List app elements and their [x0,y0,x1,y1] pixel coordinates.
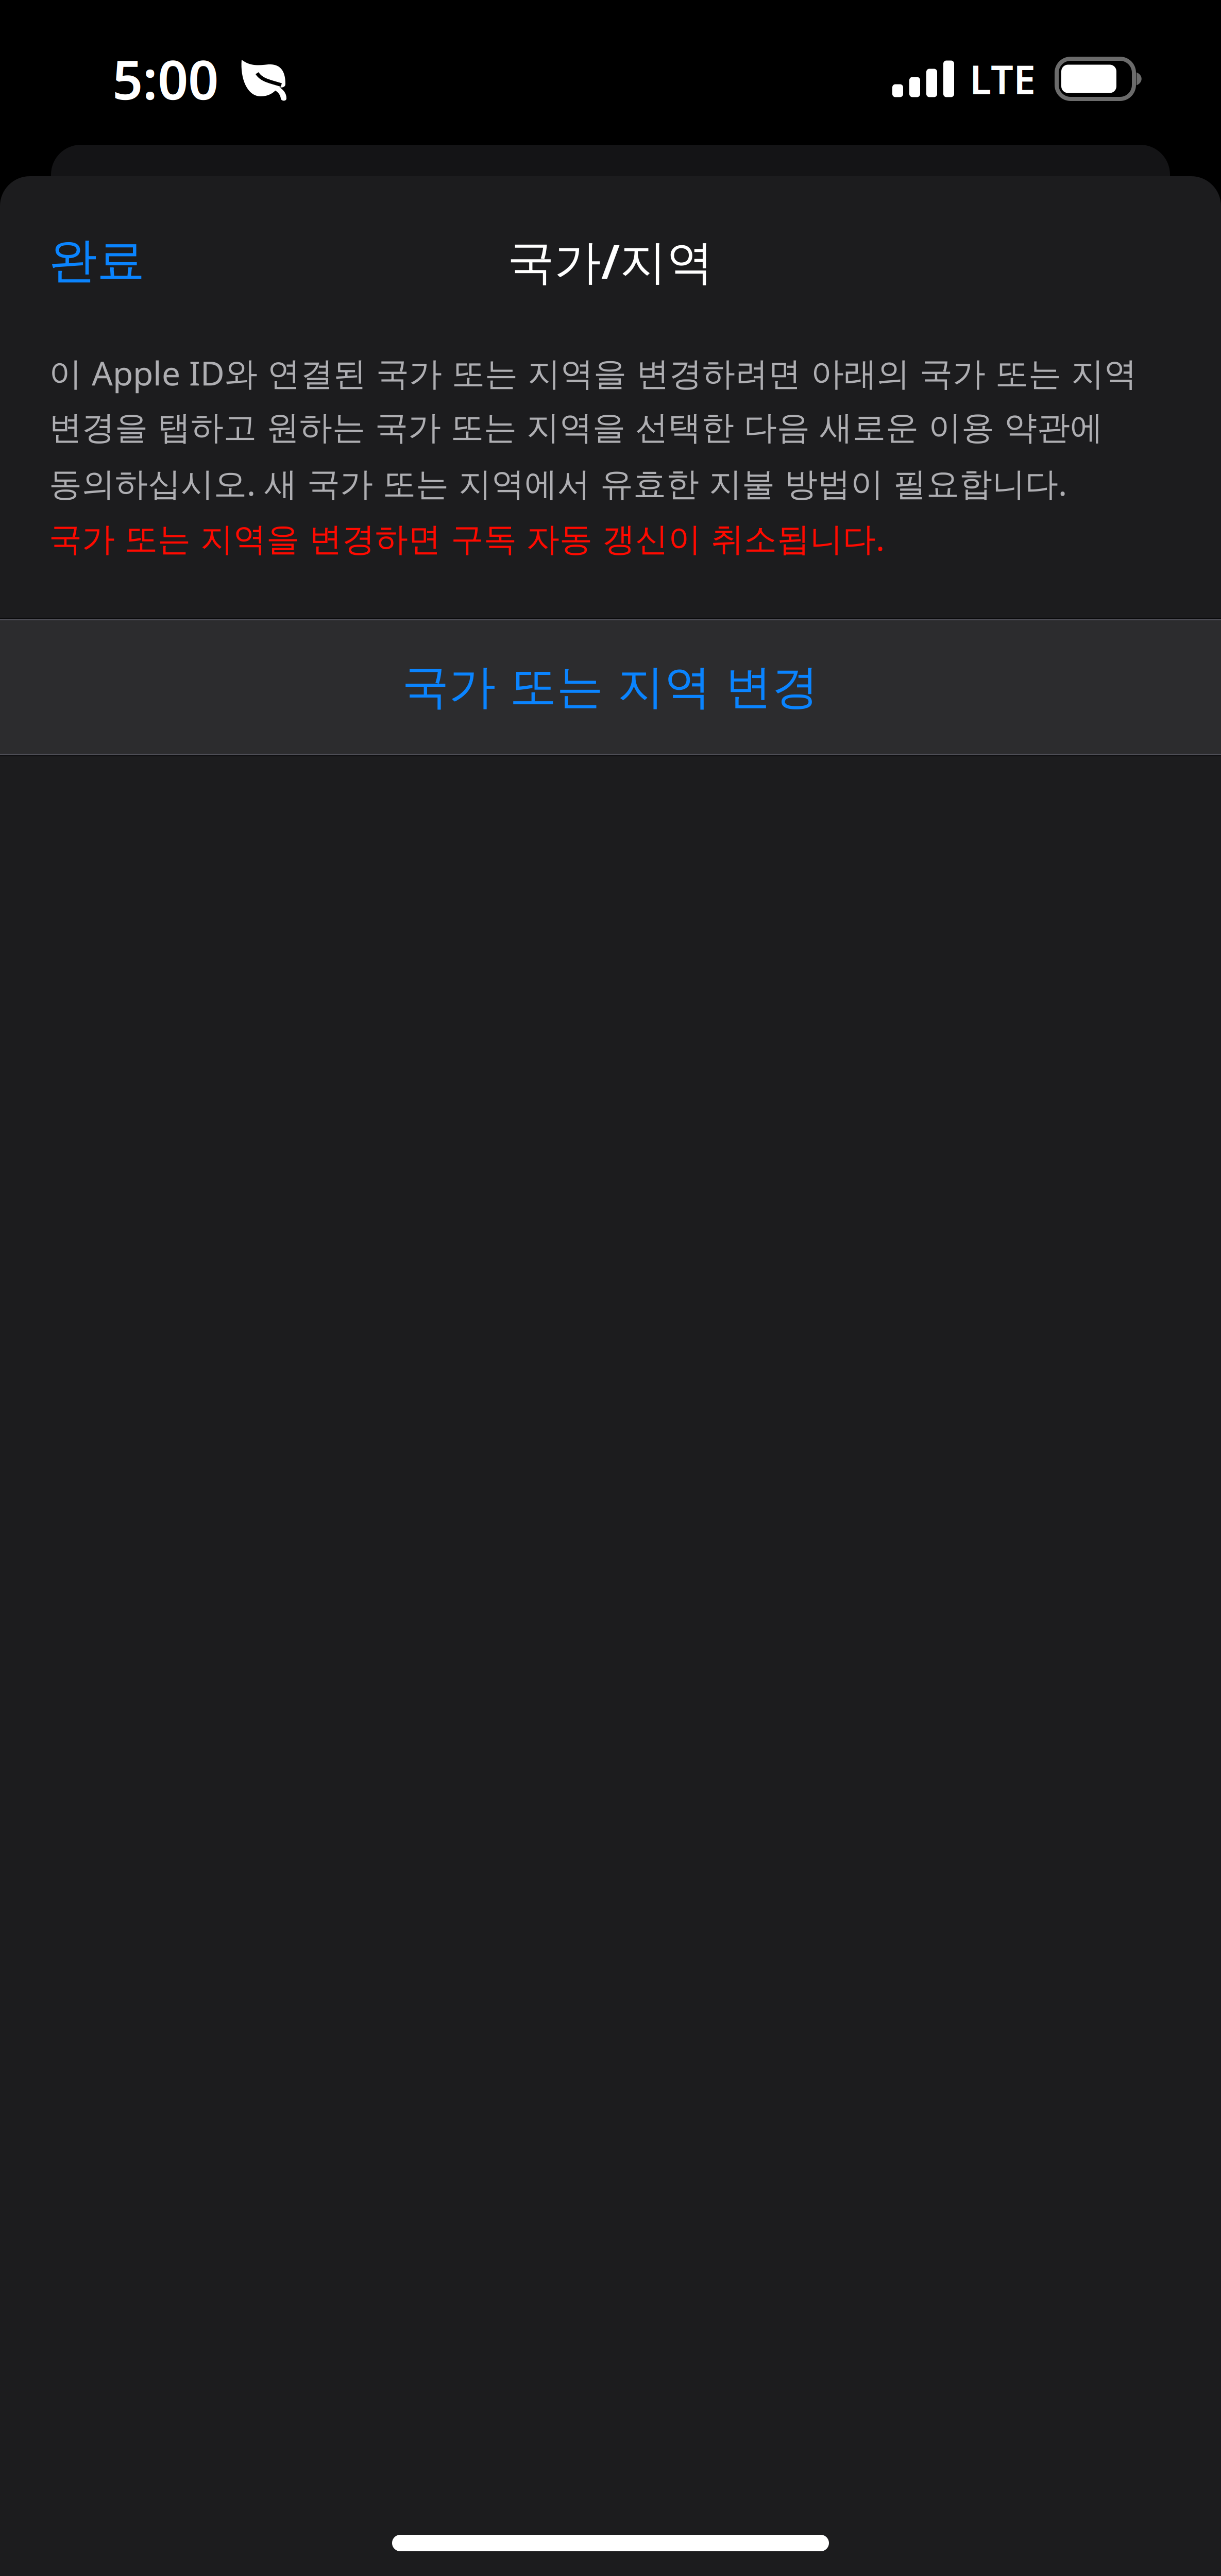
staticText: 국가 또는 지역 변경 [402,658,819,716]
staticText: 이 Apple ID와 연결된 국가 또는 지역을 변경하려면 아래의 국가 또… [49,351,1137,395]
button[interactable]: 국가 또는 지역 변경 [0,618,1221,756]
staticText: LTE [970,52,1036,105]
staticText: 국가/지역 [507,230,714,292]
button[interactable]: 완료 [0,203,194,318]
staticText: 변경을 탭하고 원하는 국가 또는 지역을 선택한 다음 새로운 이용 약관에 [49,408,1103,448]
staticText: 국가 또는 지역을 변경하면 구독 자동 갱신이 취소됩니다. [49,516,885,560]
staticText: 동의하십시오. 새 국가 또는 지역에서 유효한 지불 방법이 필요합니다. [49,461,1067,505]
staticText: 완료 [49,231,145,290]
staticText: 5:00 [112,43,218,114]
